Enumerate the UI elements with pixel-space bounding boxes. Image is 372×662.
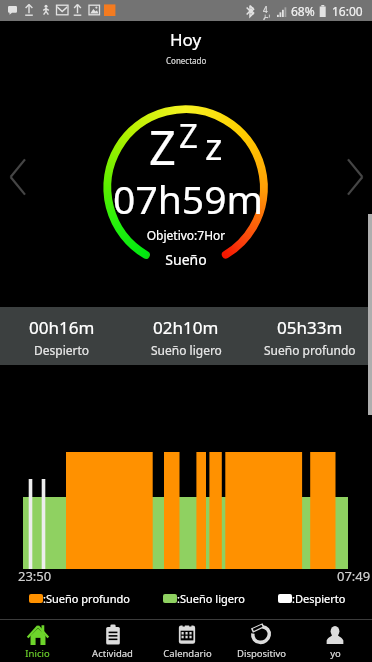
- button[interactable]: Next day: [333, 149, 372, 205]
- staticText: Dispositivo: [237, 647, 286, 660]
- staticText: Calendario: [163, 647, 212, 660]
- staticText: Objetivo:7Hor: [0, 227, 372, 243]
- staticText: Actividad: [92, 647, 133, 660]
- staticText: :Despierto: [292, 591, 346, 606]
- button[interactable]: Actividad: [75, 620, 150, 660]
- staticText: 4G: [263, 4, 273, 20]
- staticText: Sueño profundo: [264, 342, 356, 358]
- button[interactable]: Dispositivo: [224, 620, 298, 660]
- staticText: yo: [330, 647, 341, 660]
- button[interactable]: yo: [298, 620, 372, 660]
- button[interactable]: Inicio: [0, 620, 75, 660]
- staticText: z: [205, 120, 223, 170]
- staticText: 05h33m: [277, 316, 343, 339]
- staticText: 00h16m: [29, 316, 95, 339]
- staticText: Hoy: [170, 28, 202, 51]
- staticText: :Sueño ligero: [177, 591, 245, 606]
- staticText: Z: [179, 113, 198, 158]
- staticText: 68%: [291, 3, 315, 19]
- staticText: :Sueño profundo: [43, 591, 130, 606]
- staticText: Inicio: [25, 647, 50, 660]
- staticText: 07:49: [337, 567, 371, 585]
- button[interactable]: Previous day: [0, 149, 40, 205]
- staticText: 23:50: [18, 567, 52, 585]
- staticText: Despierto: [34, 342, 90, 358]
- staticText: Sueño: [0, 250, 372, 269]
- button[interactable]: Calendario: [150, 620, 224, 660]
- button[interactable]: 00h16m: [0, 307, 124, 358]
- button[interactable]: 05h33m: [248, 307, 372, 358]
- staticText: 02h10m: [153, 316, 219, 339]
- button[interactable]: 02h10m: [124, 307, 248, 358]
- staticText: 16:00: [332, 3, 363, 19]
- staticText: 07h59m: [2, 172, 372, 225]
- staticText: Conectado: [166, 55, 207, 66]
- staticText: Z: [149, 115, 176, 179]
- staticText: Sueño ligero: [151, 342, 222, 358]
